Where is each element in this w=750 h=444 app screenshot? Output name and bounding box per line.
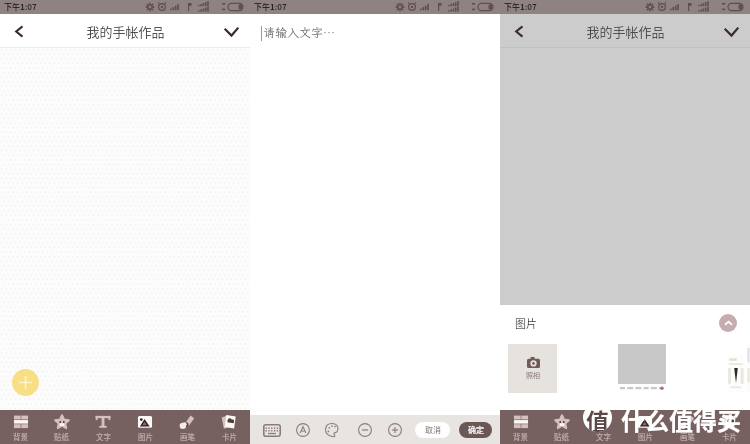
button[interactable]: 画笔 [666, 410, 708, 444]
staticText: 贴纸 [54, 431, 69, 442]
staticText: 贴纸 [554, 431, 569, 442]
staticText: 什么值得买 [621, 402, 741, 437]
staticText: 文字 [96, 431, 111, 442]
button[interactable]: Back [0, 14, 38, 48]
staticText: 画笔 [180, 431, 195, 442]
button[interactable]: Increase [385, 420, 405, 440]
staticText: 确定 [468, 424, 484, 436]
staticText: 文字 [596, 431, 611, 442]
staticText: 值 [586, 403, 609, 432]
button[interactable]: Color [322, 420, 342, 440]
button[interactable]: Collapse [719, 314, 737, 332]
button[interactable]: 卡片 [208, 410, 250, 444]
staticText: 取消 [425, 424, 441, 436]
button[interactable]: 图片 [124, 410, 166, 444]
button[interactable] [747, 344, 750, 392]
button[interactable]: Decrease [355, 420, 375, 440]
staticText: 请输入文字… [263, 25, 336, 41]
staticText: 画笔 [680, 431, 695, 442]
button[interactable]: 卡片 [708, 410, 750, 444]
button[interactable] [727, 344, 745, 392]
button[interactable]: 贴纸 [41, 410, 82, 444]
button[interactable]: Confirm [712, 14, 750, 48]
button[interactable]: 贴纸 [541, 410, 582, 444]
button[interactable]: 背景 [0, 410, 41, 444]
staticText: 下午1:07 [504, 1, 537, 13]
button[interactable]: Keyboard [261, 419, 283, 441]
staticText: 图片 [638, 431, 653, 442]
button[interactable]: Back [500, 14, 538, 48]
button[interactable]: 文字 [82, 410, 124, 444]
staticText: 图片 [138, 431, 153, 442]
button[interactable]: Confirm [212, 14, 250, 48]
button[interactable]: 背景 [500, 410, 541, 444]
button[interactable]: Font size [293, 420, 313, 440]
staticText: 卡片 [722, 431, 737, 442]
button[interactable]: 文字 [582, 410, 624, 444]
staticText: 背景 [13, 431, 28, 442]
button[interactable]: 照相 [508, 344, 557, 393]
button[interactable]: 取消 [415, 422, 450, 438]
staticText: 照相 [526, 370, 540, 380]
staticText: 背景 [513, 431, 528, 442]
button[interactable]: 画笔 [166, 410, 208, 444]
staticText: 卡片 [222, 431, 237, 442]
staticText: 下午1:07 [254, 1, 287, 13]
staticText: 下午1:07 [4, 1, 37, 13]
button[interactable]: 图片 [624, 410, 666, 444]
staticText: 我的手帐作品 [586, 22, 665, 41]
staticText: 我的手帐作品 [86, 22, 165, 41]
button[interactable]: 确定 [459, 422, 492, 438]
button[interactable]: Add [12, 369, 39, 396]
staticText: 图片 [515, 315, 537, 331]
